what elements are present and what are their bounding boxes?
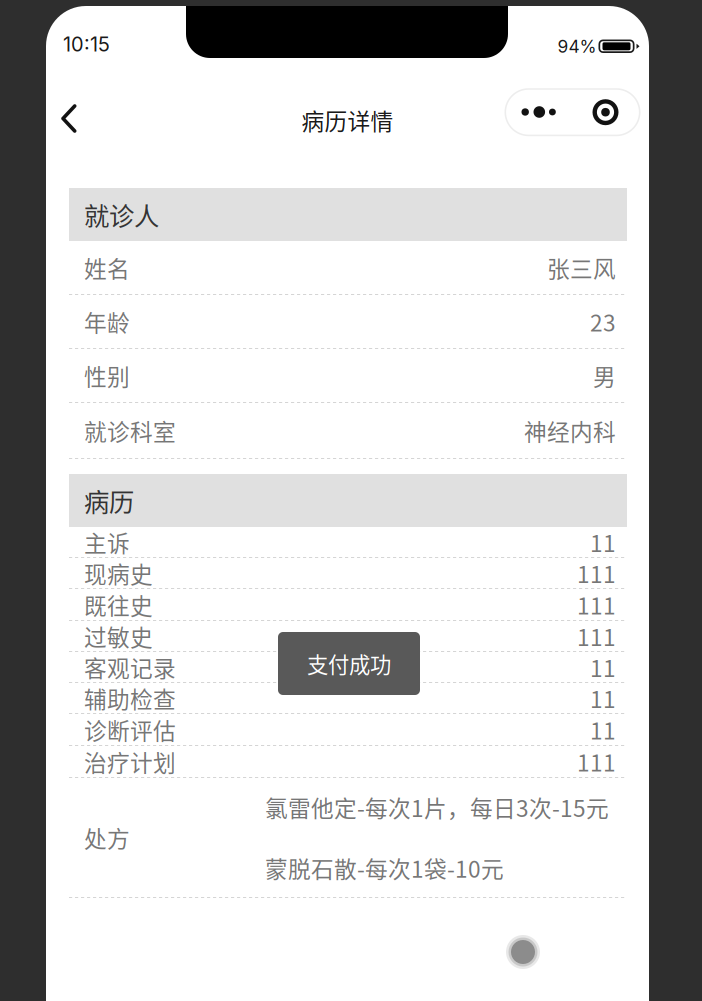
staticText: 既往史 (84, 588, 153, 621)
staticText: 就诊科室 (84, 414, 176, 447)
staticText: 姓名 (84, 251, 130, 284)
staticText: 111 (577, 620, 616, 652)
staticText: 11 (590, 713, 616, 746)
staticText: 处方 (84, 821, 130, 854)
button[interactable]: 更多 (504, 88, 640, 136)
staticText: 111 (577, 745, 616, 778)
staticText: 111 (577, 588, 616, 621)
staticText: 过敏史 (84, 620, 153, 652)
staticText: 神经内科 (524, 414, 616, 447)
staticText: 张三风 (547, 251, 616, 284)
staticText: 94% (557, 36, 596, 57)
staticText: 主诉 (84, 526, 130, 558)
staticText: 11 (590, 682, 616, 714)
staticText: 辅助检查 (84, 682, 176, 714)
staticText: 11 (590, 651, 616, 683)
button[interactable]: 返回 (42, 90, 96, 146)
staticText: 治疗计划 (84, 745, 176, 778)
staticText: 性别 (84, 359, 130, 392)
staticText: 病历 (84, 482, 134, 519)
staticText: 年龄 (84, 305, 130, 338)
staticText: 111 (577, 557, 616, 589)
staticText: 病历详情 (301, 104, 393, 136)
staticText: 客观记录 (84, 651, 176, 683)
staticText: 男 (593, 359, 616, 392)
staticText: 诊断评估 (84, 713, 176, 746)
staticText: 氯雷他定-每次1片，每日3次-15元 (265, 791, 609, 823)
staticText: 现病史 (84, 557, 153, 589)
staticText: 11 (590, 526, 616, 558)
staticText: 10:15 (63, 32, 110, 56)
staticText: 23 (590, 305, 616, 338)
staticText: 蒙脱石散-每次1袋-10元 (265, 851, 504, 884)
staticText: 就诊人 (84, 196, 159, 233)
staticText: 支付成功 (307, 648, 391, 679)
